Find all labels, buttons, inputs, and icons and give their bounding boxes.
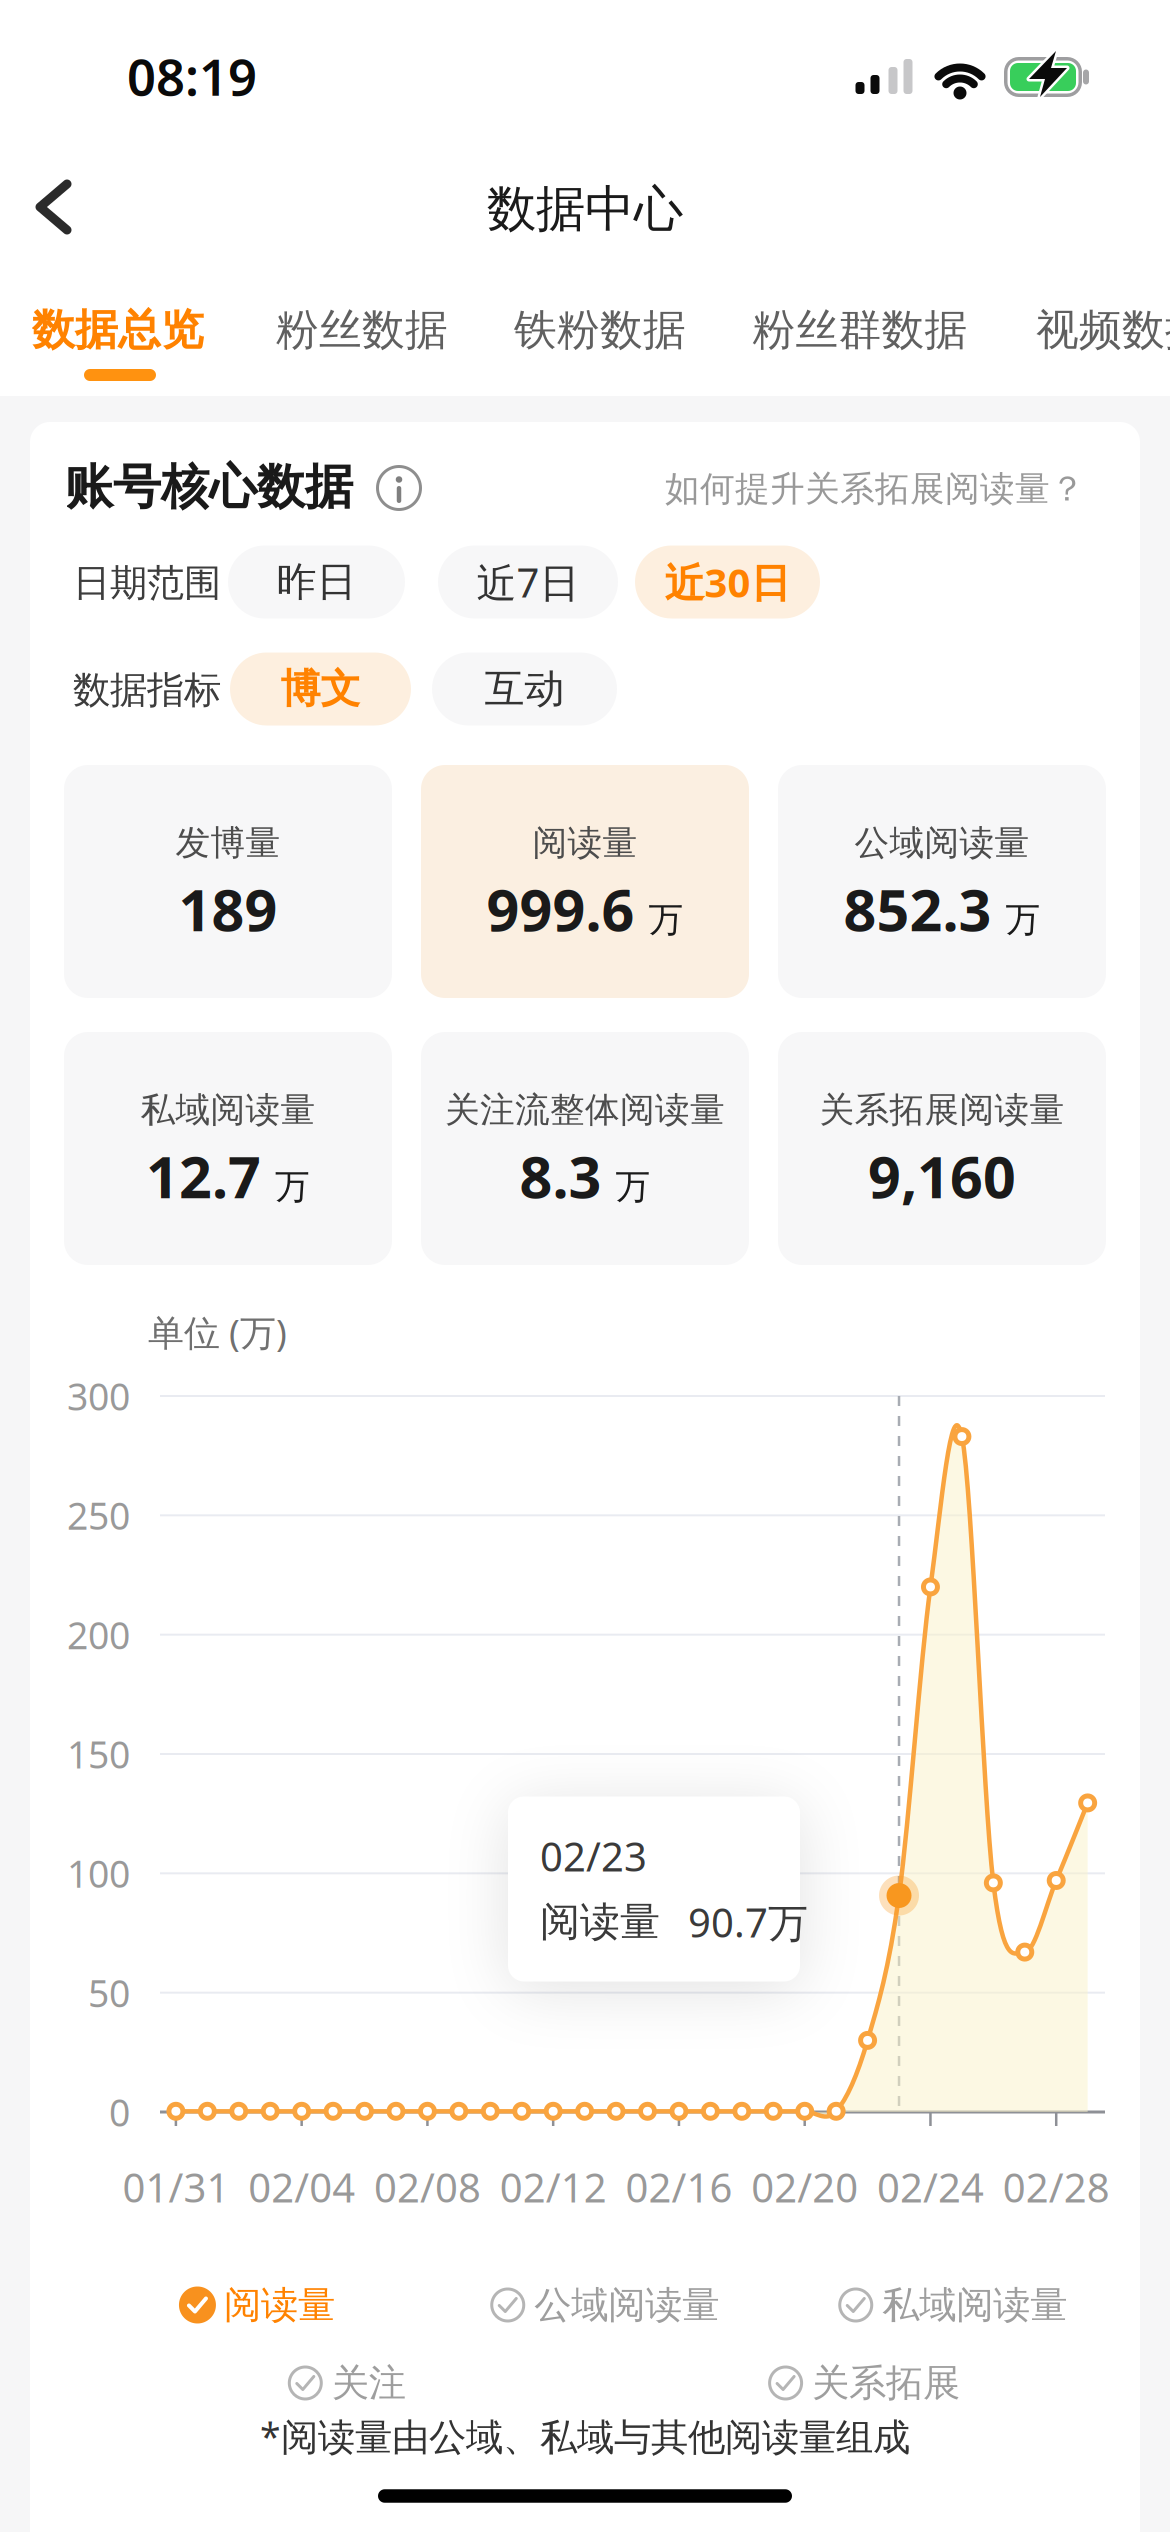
staticText: 万 <box>615 1165 650 1208</box>
staticText: 250 <box>67 1490 130 1540</box>
staticText: 8.3 <box>519 1138 601 1214</box>
staticText: *阅读量由公域、私域与其他阅读量组成 <box>260 2411 910 2461</box>
button[interactable]: 私域阅读量 <box>837 2282 1067 2328</box>
staticText: 发博量 <box>175 822 280 864</box>
staticText: 公域阅读量 <box>534 2282 719 2328</box>
staticText: 01/31 <box>122 2160 229 2213</box>
staticText: 私域阅读量 <box>882 2282 1067 2328</box>
staticText: 博文 <box>280 664 360 713</box>
staticText: 02/23 <box>540 1829 647 1882</box>
staticText: 9,160 <box>868 1138 1016 1214</box>
staticText: 铁粉数据 <box>514 304 686 356</box>
button[interactable]: 铁粉数据 <box>514 304 686 356</box>
staticText: 如何提升关系拓展阅读量？ <box>665 468 1085 510</box>
button[interactable]: 如何提升关系拓展阅读量？ <box>645 468 1085 510</box>
staticText: 数据总览 <box>32 304 204 356</box>
button[interactable]: 阅读量 <box>179 2282 335 2328</box>
staticText: 50 <box>88 1968 130 2017</box>
staticText: 视频数据 <box>1036 304 1170 356</box>
button[interactable]: 近30日 <box>635 545 820 618</box>
staticText: 02/20 <box>751 2160 858 2213</box>
button[interactable]: 互动 <box>432 652 617 725</box>
staticText: 万 <box>275 1165 310 1208</box>
staticText: 999.6 <box>486 871 634 947</box>
staticText: 账号核心数据 <box>65 457 353 516</box>
button[interactable]: 关注 <box>287 2360 406 2406</box>
staticText: 阅读量 <box>532 822 637 864</box>
staticText: 万 <box>648 898 683 941</box>
button[interactable]: 昨日 <box>228 545 405 618</box>
staticText: 02/16 <box>625 2160 732 2213</box>
button[interactable]: 关系拓展阅读量 <box>778 1032 1106 1265</box>
button[interactable]: 公域阅读量 <box>778 765 1106 998</box>
staticText: 关注流整体阅读量 <box>445 1089 725 1131</box>
staticText: 昨日 <box>276 557 356 606</box>
staticText: 单位 (万) <box>148 1308 287 1356</box>
staticText: 08:19 <box>127 42 257 110</box>
button[interactable]: 阅读量 <box>421 765 749 998</box>
staticText: 万 <box>1005 898 1040 941</box>
staticText: 近30日 <box>664 555 790 608</box>
staticText: 近7日 <box>476 555 579 608</box>
button[interactable]: 视频数据 <box>1036 304 1170 356</box>
button[interactable] <box>37 178 77 236</box>
button[interactable]: 博文 <box>230 652 411 725</box>
staticText: 02/28 <box>1003 2160 1110 2213</box>
staticText: 数据指标 <box>73 667 221 713</box>
button[interactable]: 近7日 <box>438 545 618 618</box>
button[interactable]: 粉丝数据 <box>276 304 448 356</box>
staticText: 12.7 <box>146 1138 261 1214</box>
staticText: 日期范围 <box>73 560 221 606</box>
staticText: 189 <box>178 871 277 947</box>
staticText: 公域阅读量 <box>854 822 1029 864</box>
button[interactable]: 关系拓展 <box>767 2360 960 2406</box>
staticText: 02/24 <box>877 2160 984 2213</box>
staticText: 852.3 <box>843 871 991 947</box>
button[interactable]: 粉丝群数据 <box>752 304 967 356</box>
staticText: 02/04 <box>248 2160 355 2213</box>
staticText: 200 <box>67 1610 130 1659</box>
button[interactable]: 私域阅读量 <box>64 1032 392 1265</box>
staticText: 关系拓展 <box>812 2360 960 2406</box>
button[interactable]: 发博量 <box>64 765 392 998</box>
staticText: 互动 <box>484 664 564 713</box>
button[interactable]: 关注流整体阅读量 <box>421 1032 749 1265</box>
staticText: 300 <box>67 1371 130 1421</box>
staticText: 关注 <box>332 2360 406 2406</box>
staticText: 02/12 <box>500 2160 607 2213</box>
button[interactable]: 数据总览 <box>32 304 204 356</box>
staticText: 粉丝群数据 <box>752 304 967 356</box>
staticText: 关系拓展阅读量 <box>819 1089 1064 1131</box>
button[interactable]: 公域阅读量 <box>489 2282 719 2328</box>
staticText: 90.7万 <box>688 1895 808 1948</box>
staticText: 0 <box>109 2087 130 2137</box>
staticText: 阅读量 <box>224 2282 335 2328</box>
staticText: 数据中心 <box>487 179 683 239</box>
staticText: 02/08 <box>374 2160 481 2213</box>
staticText: 私域阅读量 <box>140 1089 315 1131</box>
staticText: 粉丝数据 <box>276 304 448 356</box>
staticText: 100 <box>67 1848 130 1898</box>
staticText: 阅读量 <box>540 1897 660 1946</box>
staticText: 150 <box>67 1729 130 1779</box>
